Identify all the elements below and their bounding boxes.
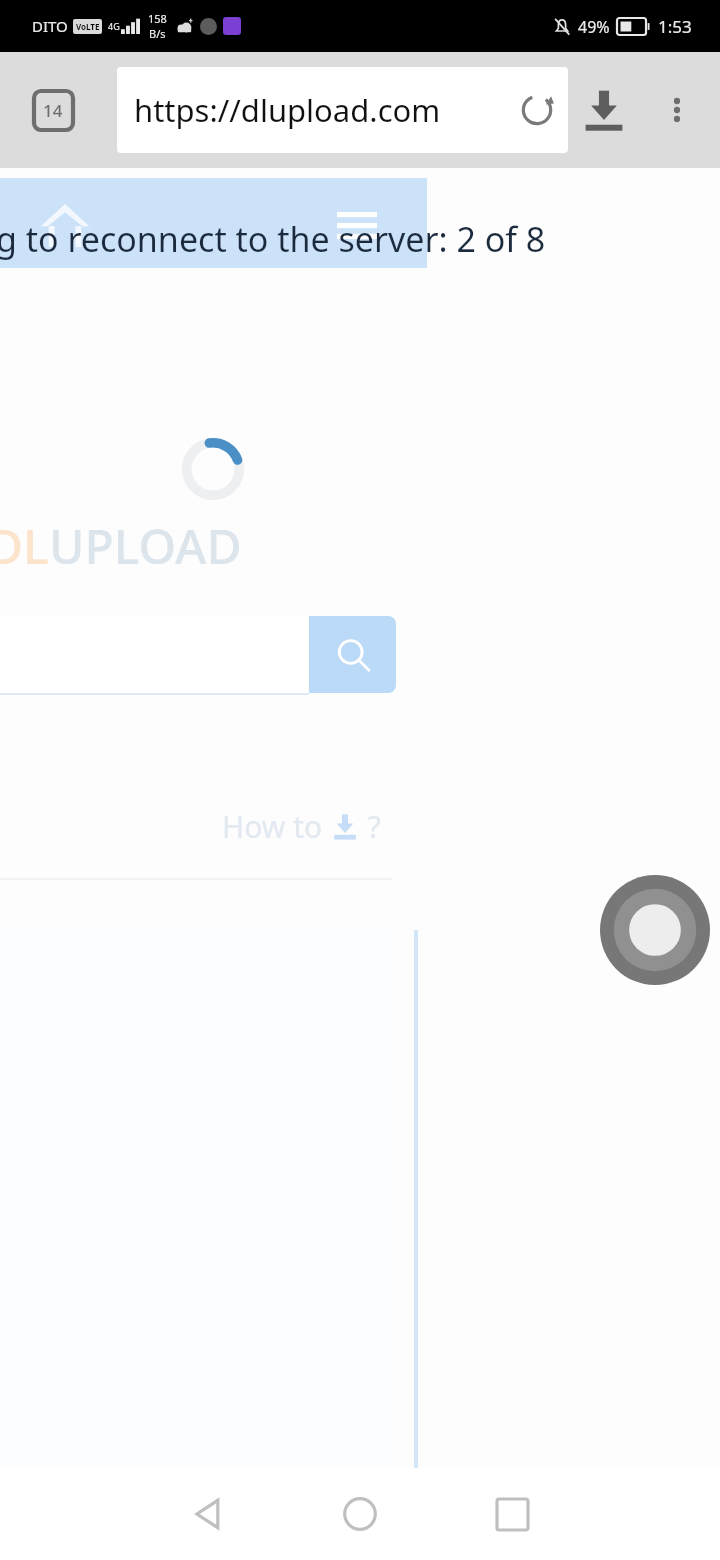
staticText: g to reconnect to the server: 2 of 8 xyxy=(0,216,546,262)
button[interactable]: Home xyxy=(325,1479,395,1549)
staticText: DL xyxy=(0,513,49,578)
staticText: https://dlupload.com xyxy=(134,89,441,131)
button[interactable]: Search xyxy=(309,616,396,693)
button[interactable]: Tabs, 14 open xyxy=(33,90,73,130)
staticText: DITO xyxy=(32,16,68,36)
button[interactable]: More options xyxy=(650,83,704,137)
button[interactable]: Recent apps xyxy=(477,1479,547,1549)
staticText: VoLTE xyxy=(76,21,100,32)
staticText: 1:53 xyxy=(658,15,692,38)
button[interactable]: Downloads xyxy=(575,81,633,139)
staticText: 4G xyxy=(108,20,120,32)
staticText: 158 xyxy=(148,11,167,26)
staticText: How to xyxy=(222,806,330,847)
button[interactable]: How to xyxy=(222,806,381,847)
button[interactable]: Reload xyxy=(515,88,559,132)
staticText: B/s xyxy=(149,26,166,41)
button[interactable]: https://dlupload.com xyxy=(117,67,568,153)
staticText: ? xyxy=(360,806,381,847)
button[interactable]: Menu xyxy=(330,198,384,252)
button[interactable]: Back xyxy=(172,1479,242,1549)
staticText: 49% xyxy=(578,16,610,38)
staticText: 14 xyxy=(43,99,63,122)
button[interactable]: Assistive touch xyxy=(600,875,710,985)
staticText: UPLOAD xyxy=(49,513,242,578)
